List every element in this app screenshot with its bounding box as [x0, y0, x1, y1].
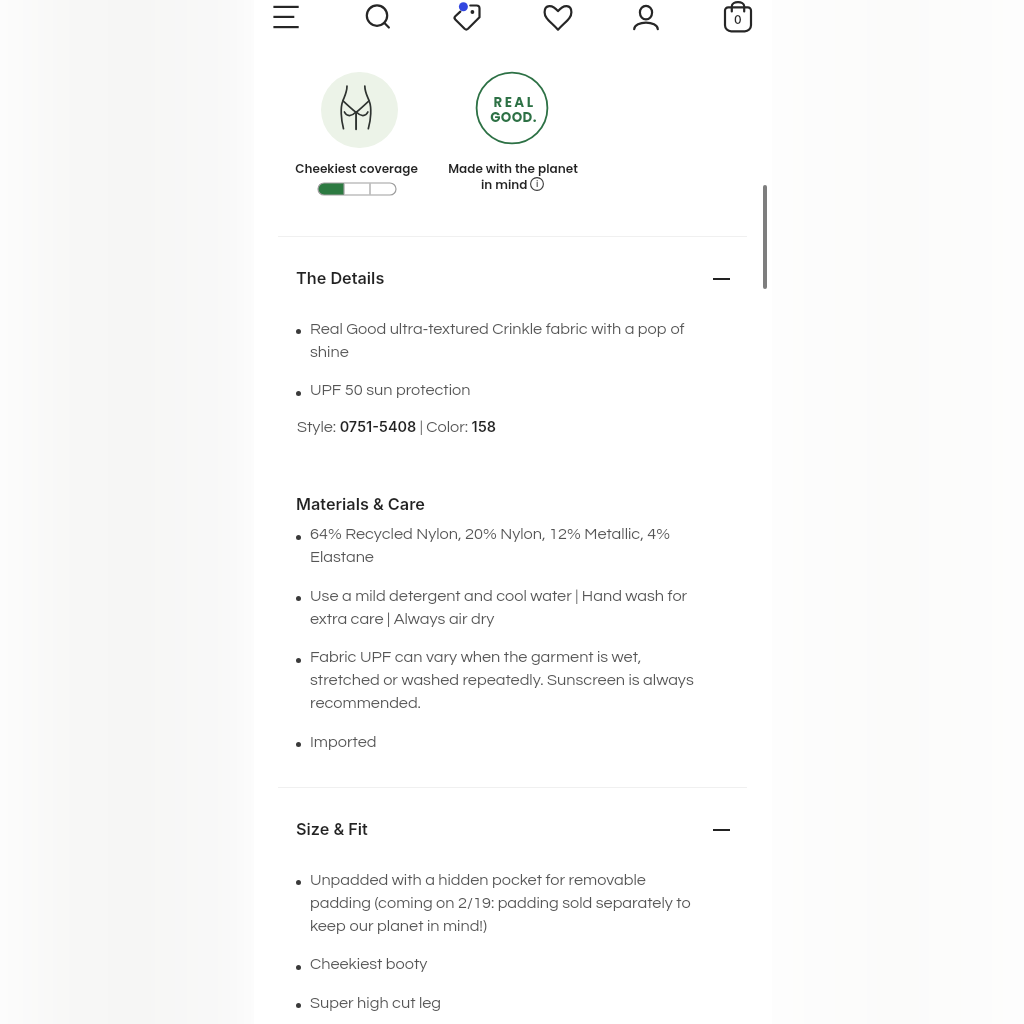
button[interactable]: Cheekiest coverage — [321, 72, 398, 148]
staticText: REAL — [493, 93, 536, 112]
staticText: Use a mild detergent and cool water | Ha… — [310, 588, 700, 628]
button[interactable]: More information — [530, 177, 544, 191]
staticText: Imported — [310, 734, 377, 751]
staticText: Super high cut leg — [310, 995, 442, 1012]
staticText: The Details — [296, 268, 385, 288]
button[interactable]: Search — [356, 0, 398, 38]
staticText: 0 — [734, 13, 742, 27]
staticText: UPF 50 sun protection — [310, 382, 471, 399]
staticText: in mind — [481, 176, 528, 193]
staticText: GOOD. — [490, 108, 537, 127]
staticText: Real Good ultra-textured Crinkle fabric … — [310, 321, 700, 361]
button[interactable]: Account — [625, 0, 667, 38]
button[interactable]: Bag — [717, 0, 759, 38]
staticText: i — [536, 178, 539, 190]
button[interactable]: Favorites — [537, 0, 579, 38]
staticText: Unpadded with a hidden pocket for remova… — [310, 872, 703, 935]
button[interactable] — [254, 803, 772, 849]
staticText: Size & Fit — [296, 819, 368, 839]
button[interactable]: Menu — [265, 0, 307, 38]
staticText: Fabric UPF can vary when the garment is … — [310, 649, 700, 712]
staticText: Cheekiest booty — [310, 956, 428, 973]
button[interactable]: Real Good — [474, 70, 550, 146]
staticText: Cheekiest coverage — [295, 160, 418, 177]
button[interactable]: Offers — [446, 0, 488, 38]
staticText: Made with the planet — [448, 160, 578, 177]
button[interactable] — [254, 252, 772, 298]
staticText: Style: 0751-5408 | Color: 158 — [297, 418, 496, 435]
staticText: 64% Recycled Nylon, 20% Nylon, 12% Metal… — [310, 526, 688, 566]
staticText: Materials & Care — [296, 494, 425, 514]
